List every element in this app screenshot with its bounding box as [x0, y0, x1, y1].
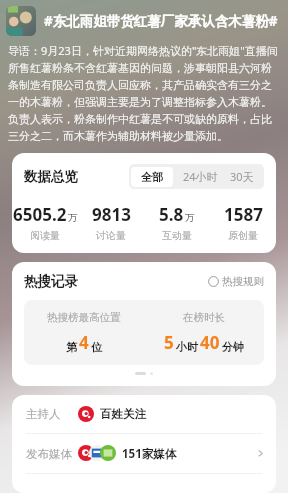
staticText: 热搜记录 [24, 273, 78, 290]
button[interactable]: 5.8 [144, 203, 210, 242]
staticText: 5 [164, 331, 174, 354]
other: 查看媒体列表 [255, 448, 266, 459]
button[interactable]: 1587 [210, 203, 276, 242]
staticText: #东北雨姐带货红薯厂家承认含木薯粉# [44, 12, 278, 30]
staticText: 151家媒体 [122, 446, 177, 462]
staticText: 主持人 [26, 407, 61, 421]
button[interactable]: 24小时 [175, 164, 226, 189]
other: 热搜规则说明 [208, 276, 219, 287]
button[interactable]: 热搜榜最高位置 [24, 300, 264, 365]
staticText: 互动量 [162, 229, 192, 242]
button[interactable]: 全部 [131, 167, 173, 187]
button[interactable]: 发布媒体 [12, 434, 276, 473]
staticText: 5.8 [159, 203, 184, 226]
staticText: 发布媒体 [26, 447, 72, 461]
staticText: 24小时 [183, 169, 218, 184]
staticText: 阅读量 [30, 229, 60, 242]
staticText: 数据总览 [24, 168, 78, 185]
staticText: 第 [66, 340, 77, 354]
button[interactable]: 主持人 [12, 395, 276, 433]
staticText: 在榜时长 [183, 311, 225, 324]
staticText: 热搜榜最高位置 [47, 311, 121, 324]
staticText: 6505.2 [13, 203, 67, 226]
staticText: 导语：9月23日，针对近期网络热议的"东北雨姐"直播间所售红薯粉条不含红薯基因的… [8, 43, 280, 143]
staticText: 9813 [92, 203, 131, 226]
button[interactable]: 9813 [78, 203, 144, 242]
staticText: 万 [68, 212, 78, 224]
staticText: 百姓关注 [100, 407, 146, 421]
staticText: 全部 [141, 170, 163, 184]
button[interactable]: 6505.2 [12, 203, 78, 242]
button[interactable]: 热搜规则说明 [208, 275, 264, 288]
staticText: 万 [185, 212, 195, 224]
staticText: 位 [91, 340, 102, 354]
staticText: 热搜规则 [222, 275, 264, 288]
staticText: 4 [79, 331, 89, 354]
staticText: 小时 [176, 340, 198, 354]
staticText: 40 [200, 331, 220, 354]
staticText: 讨论量 [96, 229, 126, 242]
button[interactable] [6, 6, 36, 36]
staticText: 原创量 [228, 229, 258, 242]
staticText: 分钟 [222, 340, 244, 354]
button[interactable]: 30天 [226, 164, 264, 189]
staticText: 1587 [224, 203, 263, 226]
staticText: 30天 [230, 169, 254, 184]
button[interactable]: #东北雨姐带货红薯厂家承认含木薯粉# [44, 12, 282, 30]
